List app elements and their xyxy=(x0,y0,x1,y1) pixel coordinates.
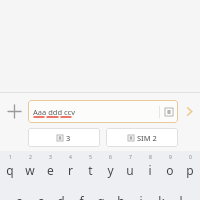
button[interactable]: Send xyxy=(178,97,200,125)
button[interactable]: 3 xyxy=(28,128,100,147)
staticText: g xyxy=(97,193,105,200)
button[interactable]: k xyxy=(151,192,171,200)
button[interactable]: 1 xyxy=(0,154,20,184)
staticText: SIM 2 xyxy=(137,133,157,143)
staticText: l xyxy=(179,193,183,200)
staticText: o xyxy=(166,162,174,178)
staticText: q xyxy=(6,162,14,178)
button[interactable]: s xyxy=(30,192,51,200)
staticText: p xyxy=(186,162,194,178)
staticText: u xyxy=(126,162,134,178)
staticText: 3 xyxy=(49,154,52,161)
staticText: e xyxy=(47,162,54,178)
button[interactable]: SIM 2 xyxy=(106,128,178,147)
button[interactable]: a xyxy=(9,192,30,200)
button[interactable]: l xyxy=(171,192,191,200)
staticText: f xyxy=(79,193,84,200)
button[interactable]: Insert xyxy=(160,100,178,123)
button[interactable]: 8 xyxy=(140,154,160,184)
staticText: 3 xyxy=(66,133,71,143)
staticText: r xyxy=(68,162,73,178)
staticText: a xyxy=(16,193,23,200)
staticText: 6 xyxy=(109,154,112,161)
button[interactable]: h xyxy=(111,192,131,200)
staticText: 1 xyxy=(9,154,12,161)
staticText: 7 xyxy=(129,154,132,161)
button[interactable]: 5 xyxy=(80,154,100,184)
button[interactable]: j xyxy=(131,192,151,200)
button[interactable]: g xyxy=(91,192,111,200)
button[interactable]: 7 xyxy=(120,154,140,184)
staticText: 2 xyxy=(29,154,32,161)
staticText: w xyxy=(25,162,35,178)
button[interactable]: 2 xyxy=(20,154,40,184)
button[interactable]: d xyxy=(51,192,71,200)
button[interactable]: 0 xyxy=(180,154,200,184)
staticText: k xyxy=(158,193,165,200)
staticText: 8 xyxy=(149,154,152,161)
staticText: i xyxy=(148,162,152,178)
staticText: 0 xyxy=(189,154,192,161)
staticText: j xyxy=(139,193,143,200)
staticText: s xyxy=(38,193,44,200)
staticText: t xyxy=(88,162,93,178)
staticText: h xyxy=(117,193,125,200)
button[interactable]: 6 xyxy=(100,154,120,184)
button[interactable]: Add attachment xyxy=(0,97,28,125)
button[interactable]: f xyxy=(71,192,91,200)
staticText: 9 xyxy=(169,154,172,161)
staticText: 5 xyxy=(89,154,92,161)
button[interactable]: 9 xyxy=(160,154,180,184)
button[interactable]: Aaa ddd ccv xyxy=(28,100,178,123)
staticText: 4 xyxy=(69,154,72,161)
staticText: y xyxy=(107,162,114,178)
staticText: d xyxy=(57,193,65,200)
button[interactable]: 4 xyxy=(60,154,80,184)
button[interactable]: 3 xyxy=(40,154,60,184)
staticText: Aaa ddd ccv xyxy=(33,107,75,117)
